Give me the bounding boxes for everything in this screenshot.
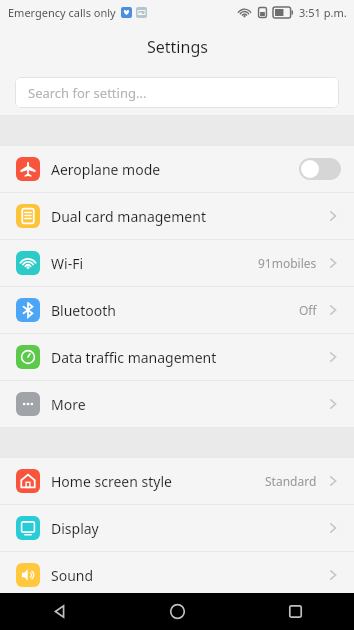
button[interactable]: Sound — [0, 552, 354, 598]
button[interactable]: Dual card management — [0, 193, 354, 240]
staticText: Search for setting... — [28, 84, 147, 102]
staticText: Standard — [265, 473, 317, 489]
staticText: Off — [299, 302, 317, 318]
button[interactable]: Search for setting... — [15, 77, 339, 108]
staticText: Dual card management — [51, 207, 325, 226]
button[interactable]: Display — [0, 505, 354, 552]
staticText: Display — [51, 519, 325, 538]
button[interactable]: Wi-Fi — [0, 240, 354, 287]
staticText: Data traffic management — [51, 348, 325, 367]
button[interactable]: More — [0, 381, 354, 427]
staticText: 3:51 p.m. — [299, 5, 347, 20]
button[interactable]: Bluetooth — [0, 287, 354, 334]
button[interactable]: Recents — [236, 593, 354, 630]
button[interactable]: Home — [118, 593, 236, 630]
button[interactable]: Back — [0, 593, 118, 630]
button[interactable]: Home screen style — [0, 458, 354, 505]
staticText: Bluetooth — [51, 301, 299, 320]
button[interactable]: Data traffic management — [0, 334, 354, 381]
button[interactable]: Aeroplane mode toggle — [299, 158, 341, 180]
staticText: Sound — [51, 566, 325, 585]
button[interactable]: Aeroplane mode — [0, 146, 354, 193]
staticText: 91mobiles — [258, 255, 317, 271]
staticText: Settings — [147, 36, 208, 58]
staticText: Home screen style — [51, 472, 265, 491]
staticText: Emergency calls only — [8, 5, 116, 20]
staticText: Aeroplane mode — [51, 160, 299, 179]
staticText: Wi-Fi — [51, 254, 258, 273]
staticText: More — [51, 395, 325, 414]
